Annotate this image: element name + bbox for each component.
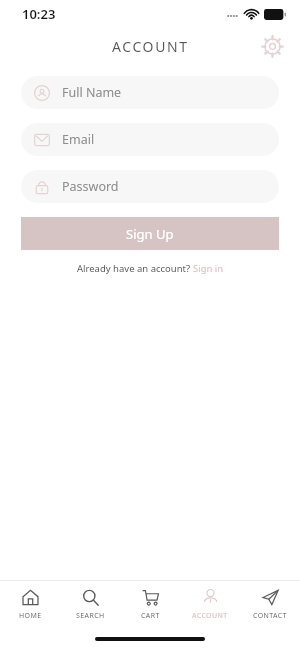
staticText: Email bbox=[62, 131, 95, 148]
staticText: CONTACT bbox=[253, 611, 287, 621]
button[interactable]: HOME bbox=[0, 581, 60, 629]
button[interactable]: Password bbox=[21, 170, 279, 203]
staticText: SEARCH bbox=[76, 611, 105, 621]
staticText: Full Name bbox=[62, 84, 122, 101]
staticText: ACCOUNT bbox=[192, 611, 228, 621]
button[interactable]: Sign Up bbox=[21, 217, 279, 250]
button[interactable]: Settings bbox=[254, 28, 290, 64]
button[interactable]: ACCOUNT bbox=[180, 581, 240, 629]
staticText: Sign Up bbox=[126, 225, 174, 243]
staticText: Password bbox=[62, 178, 119, 195]
staticText: Already have an account? bbox=[77, 262, 193, 275]
staticText: ACCOUNT bbox=[112, 37, 189, 56]
button[interactable]: SEARCH bbox=[60, 581, 120, 629]
button[interactable]: Sign in bbox=[193, 262, 224, 275]
button[interactable]: CART bbox=[120, 581, 180, 629]
button[interactable]: CONTACT bbox=[240, 581, 300, 629]
staticText: HOME bbox=[19, 611, 42, 621]
button[interactable]: Full Name bbox=[21, 76, 279, 109]
button[interactable]: Email bbox=[21, 123, 279, 156]
staticText: Sign in bbox=[193, 262, 224, 275]
staticText: CART bbox=[141, 611, 160, 621]
staticText: 10:23 bbox=[22, 5, 56, 23]
